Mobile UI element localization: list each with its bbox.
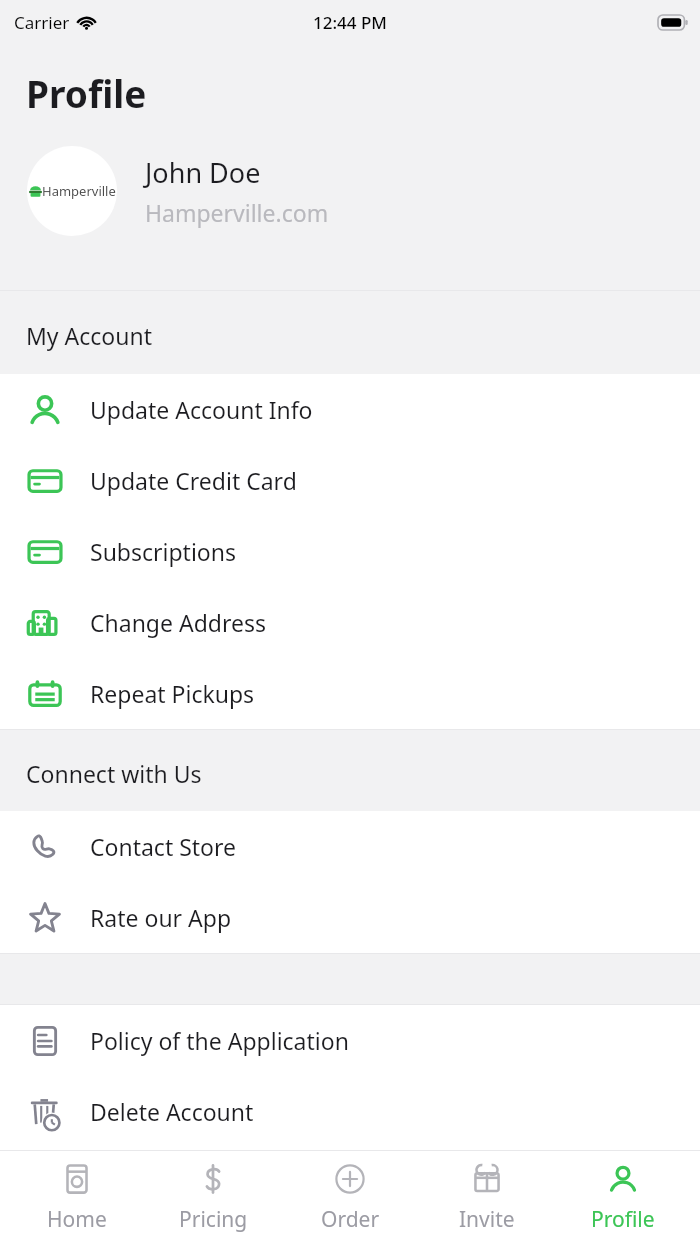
staticText: Update Account Info bbox=[90, 394, 313, 425]
staticText: Carrier bbox=[14, 11, 70, 34]
button[interactable]: Subscriptions bbox=[0, 516, 700, 587]
staticText: Connect with Us bbox=[26, 758, 202, 789]
staticText: Policy of the Application bbox=[90, 1025, 349, 1056]
staticText: Rate our App bbox=[90, 902, 232, 933]
staticText: Home bbox=[47, 1205, 107, 1234]
button[interactable]: Pricing bbox=[153, 1156, 273, 1240]
staticText: Pricing bbox=[179, 1205, 248, 1234]
button[interactable]: Update Credit Card bbox=[0, 445, 700, 516]
staticText: Contact Store bbox=[90, 831, 237, 862]
staticText: Delete Account bbox=[90, 1096, 254, 1127]
button[interactable]: Order bbox=[290, 1156, 410, 1240]
button[interactable]: Update Account Info bbox=[0, 374, 700, 445]
staticText: Profile bbox=[591, 1205, 655, 1234]
staticText: John Doe bbox=[145, 154, 261, 191]
staticText: Invite bbox=[459, 1205, 515, 1234]
staticText: Hamperville bbox=[42, 182, 116, 200]
button[interactable]: Invite bbox=[427, 1156, 547, 1240]
button[interactable]: Home bbox=[17, 1156, 137, 1240]
button[interactable]: Contact Store bbox=[0, 811, 700, 882]
button[interactable]: Rate our App bbox=[0, 882, 700, 953]
button[interactable]: Change Address bbox=[0, 587, 700, 658]
button[interactable]: Profile bbox=[563, 1156, 683, 1240]
staticText: Subscriptions bbox=[90, 536, 237, 567]
staticText: Hamperville.com bbox=[145, 197, 329, 228]
staticText: Change Address bbox=[90, 607, 266, 638]
button[interactable]: Policy of the Application bbox=[0, 1005, 700, 1076]
staticText: My Account bbox=[26, 320, 152, 351]
staticText: Order bbox=[321, 1205, 380, 1234]
button[interactable]: Repeat Pickups bbox=[0, 658, 700, 729]
staticText: Update Credit Card bbox=[90, 465, 297, 496]
staticText: Profile bbox=[26, 68, 147, 118]
staticText: Repeat Pickups bbox=[90, 678, 255, 709]
staticText: 12:44 PM bbox=[313, 11, 387, 34]
button[interactable]: Delete Account bbox=[0, 1076, 700, 1147]
